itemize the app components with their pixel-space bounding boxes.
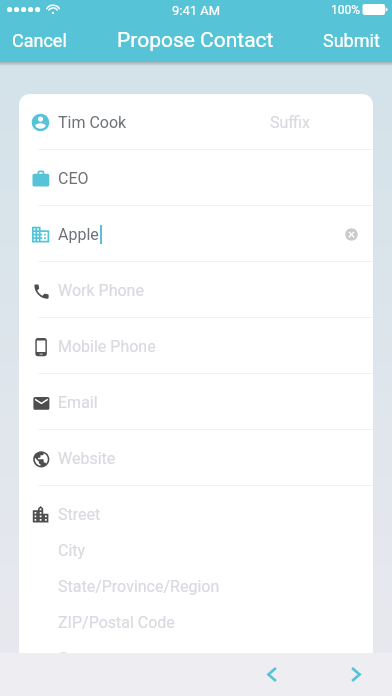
button[interactable]: ZIP/Postal Code [19,604,373,640]
staticText: Mobile Phone [58,337,156,356]
button[interactable]: Mobile Phone [19,318,373,374]
button[interactable]: Clear text [336,219,366,249]
staticText: Street [58,505,101,524]
button[interactable]: Work Phone [19,262,373,318]
button[interactable]: State/Province/Region [19,568,373,604]
button[interactable]: City [19,532,373,568]
staticText: CEO [58,169,89,188]
staticText: ZIP/Postal Code [58,613,175,632]
staticText: Suffix [270,113,310,132]
staticText: Tim Cook [58,113,127,132]
staticText: 100% [331,3,361,17]
staticText: Country [58,649,114,653]
button[interactable]: Previous field [250,653,294,696]
staticText: 9:41 AM [172,3,221,18]
staticText: State/Province/Region [58,577,220,596]
button[interactable]: CEO [19,150,373,206]
staticText: Work Phone [58,281,144,300]
button[interactable]: Submit [313,20,392,61]
button[interactable]: Apple [19,206,373,262]
staticText: Apple [58,225,99,244]
staticText: Email [58,393,98,412]
button[interactable]: Cancel [0,20,77,61]
staticText: Submit [323,30,380,51]
staticText: City [58,541,86,560]
button[interactable]: Tim Cook [19,94,373,150]
button[interactable]: Street [19,496,373,532]
button[interactable]: Next field [333,653,377,696]
staticText: Propose Contact [117,28,274,53]
button[interactable]: Website [19,430,373,486]
staticText: Cancel [12,30,67,51]
staticText: Website [58,449,116,468]
button[interactable]: Email [19,374,373,430]
